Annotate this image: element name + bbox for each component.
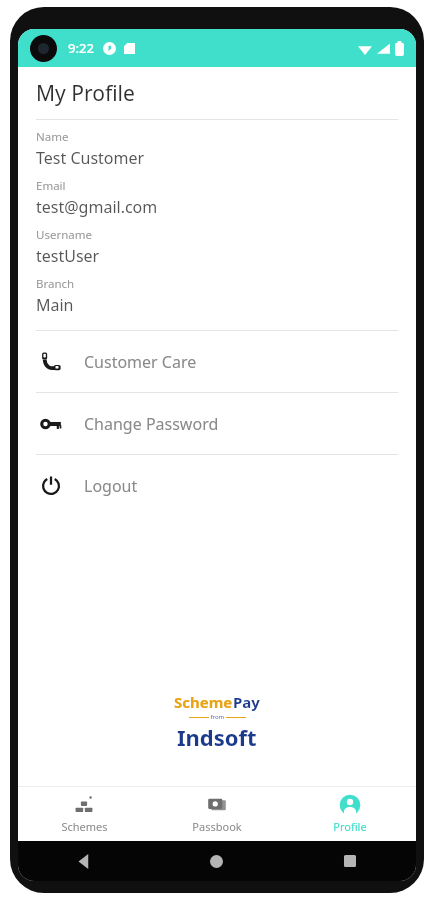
- staticText: Scheme: [174, 692, 233, 712]
- staticText: Name: [36, 129, 69, 145]
- button[interactable]: Schemes: [18, 787, 150, 841]
- staticText: Passbook: [192, 819, 242, 834]
- staticText: testUser: [36, 245, 100, 267]
- staticText: from: [209, 713, 226, 721]
- button[interactable]: Profile: [283, 787, 416, 841]
- staticText: Test Customer: [36, 147, 145, 169]
- staticText: Customer Care: [84, 351, 197, 373]
- button[interactable]: Back: [18, 841, 150, 881]
- staticText: Change Password: [84, 413, 219, 435]
- staticText: test@gmail.com: [36, 196, 158, 218]
- button[interactable]: Change Password: [18, 393, 416, 454]
- staticText: Schemes: [61, 819, 108, 834]
- staticText: 9:22: [68, 39, 94, 57]
- button[interactable]: Customer Care: [18, 331, 416, 392]
- button[interactable]: Passbook: [150, 787, 283, 841]
- staticText: Logout: [84, 475, 138, 497]
- staticText: Email: [36, 178, 66, 194]
- staticText: Profile: [333, 819, 367, 834]
- staticText: Branch: [36, 276, 75, 292]
- button[interactable]: Logout: [18, 455, 416, 516]
- staticText: Indsoft: [177, 722, 257, 752]
- button[interactable]: Recent apps: [283, 841, 416, 881]
- button[interactable]: Home: [150, 841, 283, 881]
- staticText: Username: [36, 227, 92, 243]
- staticText: Main: [36, 294, 74, 316]
- staticText: Pay: [233, 692, 260, 712]
- staticText: My Profile: [36, 79, 135, 108]
